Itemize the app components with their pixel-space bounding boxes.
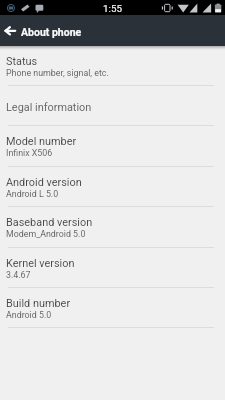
button[interactable]: Kernel version	[0, 248, 225, 288]
button[interactable]: Status	[0, 46, 225, 86]
staticText: Model number	[6, 135, 77, 148]
staticText: Infinix X506	[6, 148, 53, 158]
staticText: Legal information	[6, 101, 92, 114]
staticText: Modem_Android 5.0	[6, 229, 86, 239]
button[interactable]: Legal information	[0, 86, 225, 126]
staticText: 1:55	[103, 3, 122, 14]
button[interactable]: Model number	[0, 126, 225, 167]
staticText: Kernel version	[6, 257, 75, 270]
staticText: Status	[6, 55, 38, 68]
staticText: 3.4.67	[6, 270, 31, 280]
button[interactable]: Android version	[0, 167, 225, 207]
button[interactable]: Navigate up	[0, 15, 19, 46]
staticText: Android version	[6, 176, 82, 189]
staticText: About phone	[21, 26, 82, 38]
button[interactable]: Baseband version	[0, 207, 225, 248]
staticText: Baseband version	[6, 216, 93, 229]
staticText: Phone number, signal, etc.	[6, 68, 109, 78]
staticText: Android L 5.0	[6, 189, 59, 199]
staticText: Build number	[6, 297, 71, 310]
staticText: Android 5.0	[6, 310, 52, 320]
button[interactable]: Build number	[0, 288, 225, 328]
